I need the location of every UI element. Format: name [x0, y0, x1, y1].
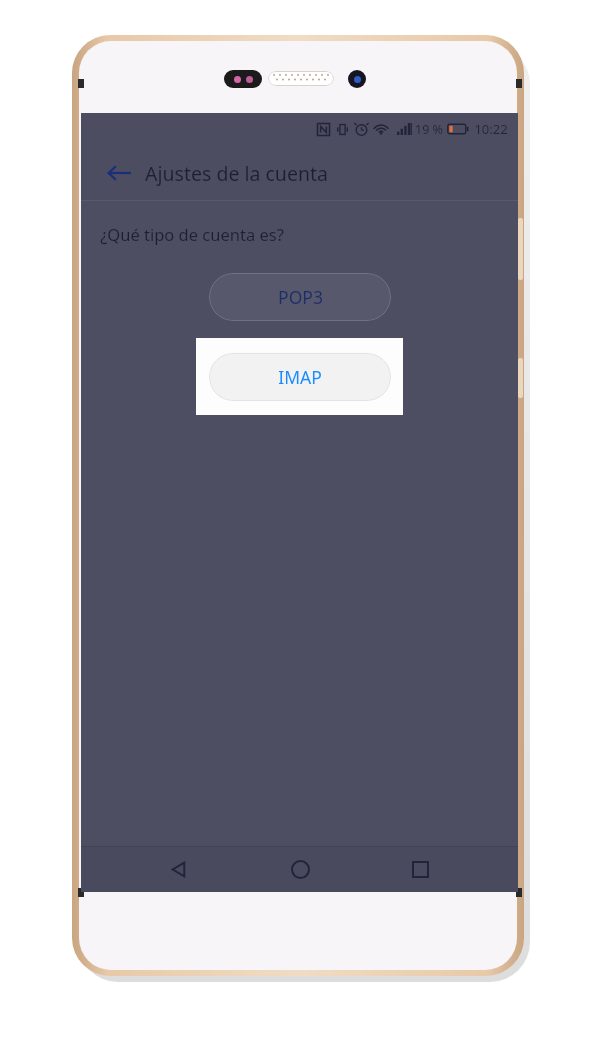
staticText: 19 %	[415, 121, 443, 138]
button[interactable]: Back	[99, 152, 141, 194]
staticText: Ajustes de la cuenta	[145, 160, 328, 187]
button[interactable]: POP3	[209, 273, 391, 321]
button[interactable]: IMAP	[209, 353, 391, 401]
staticText: IMAP	[278, 365, 322, 389]
staticText: POP3	[278, 285, 323, 309]
staticText: 10:22	[474, 120, 508, 138]
staticText: ¿Qué tipo de cuenta es?	[100, 223, 284, 245]
button[interactable]: Recent apps	[397, 846, 443, 892]
button[interactable]: Back	[156, 846, 202, 892]
button[interactable]: Home	[277, 846, 323, 892]
